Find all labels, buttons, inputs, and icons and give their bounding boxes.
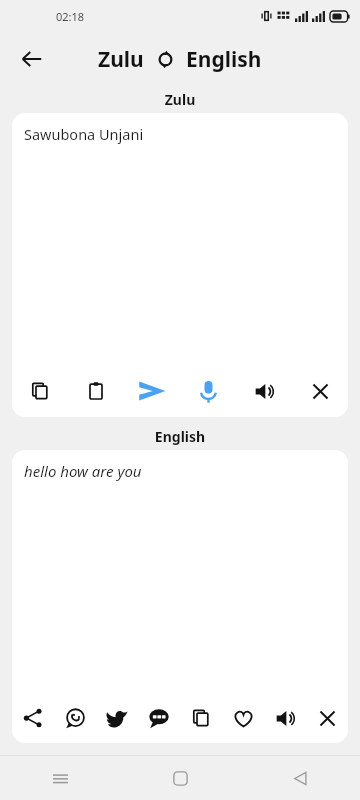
button[interactable]: hello how are you	[12, 450, 348, 693]
button[interactable]: Paste	[68, 365, 124, 417]
button[interactable]: Clear	[292, 365, 348, 417]
button[interactable]: Zulu	[98, 45, 144, 74]
staticText: hello how are you	[24, 461, 142, 481]
staticText: Zulu	[0, 90, 360, 109]
staticText: English	[0, 427, 360, 446]
button[interactable]: English	[186, 45, 262, 74]
button[interactable]: Twitter	[96, 693, 138, 743]
staticText: Sawubona Unjani	[24, 124, 144, 144]
button[interactable]: Speak	[236, 365, 292, 417]
button[interactable]: Copy	[180, 693, 222, 743]
button[interactable]: Voice input	[180, 365, 236, 417]
button[interactable]: Favorite	[222, 693, 264, 743]
button[interactable]: SMS	[138, 693, 180, 743]
button[interactable]: Speak	[264, 693, 306, 743]
button[interactable]: Share	[12, 693, 54, 743]
button[interactable]: Sawubona Unjani	[12, 113, 348, 365]
button[interactable]: Back	[240, 756, 360, 800]
staticText: 02:18	[56, 9, 85, 24]
button[interactable]: WhatsApp	[54, 693, 96, 743]
button[interactable]: Copy	[12, 365, 68, 417]
button[interactable]: Recents	[0, 756, 120, 800]
button[interactable]: Translate	[124, 365, 180, 417]
button[interactable]: Home	[120, 756, 240, 800]
button[interactable]: Back	[10, 37, 54, 81]
button[interactable]: Swap languages	[150, 44, 180, 74]
button[interactable]: Close	[306, 693, 348, 743]
